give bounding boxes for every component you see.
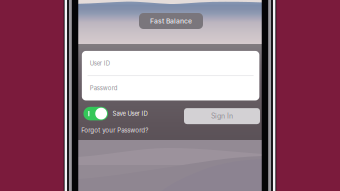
staticText: Password — [90, 84, 118, 92]
button[interactable]: Password — [82, 76, 259, 100]
staticText: Fast Balance — [150, 17, 192, 25]
button[interactable]: Forgot your Password? — [81, 126, 148, 134]
button[interactable]: User ID — [82, 51, 259, 75]
staticText: Save User ID — [113, 110, 148, 117]
button[interactable]: Save User ID — [83, 107, 148, 120]
button[interactable]: Sign In — [184, 108, 260, 124]
button[interactable]: Fast Balance — [139, 13, 203, 29]
staticText: Forgot your Password? — [81, 126, 148, 134]
staticText: Sign In — [211, 112, 233, 120]
staticText: User ID — [90, 60, 110, 67]
